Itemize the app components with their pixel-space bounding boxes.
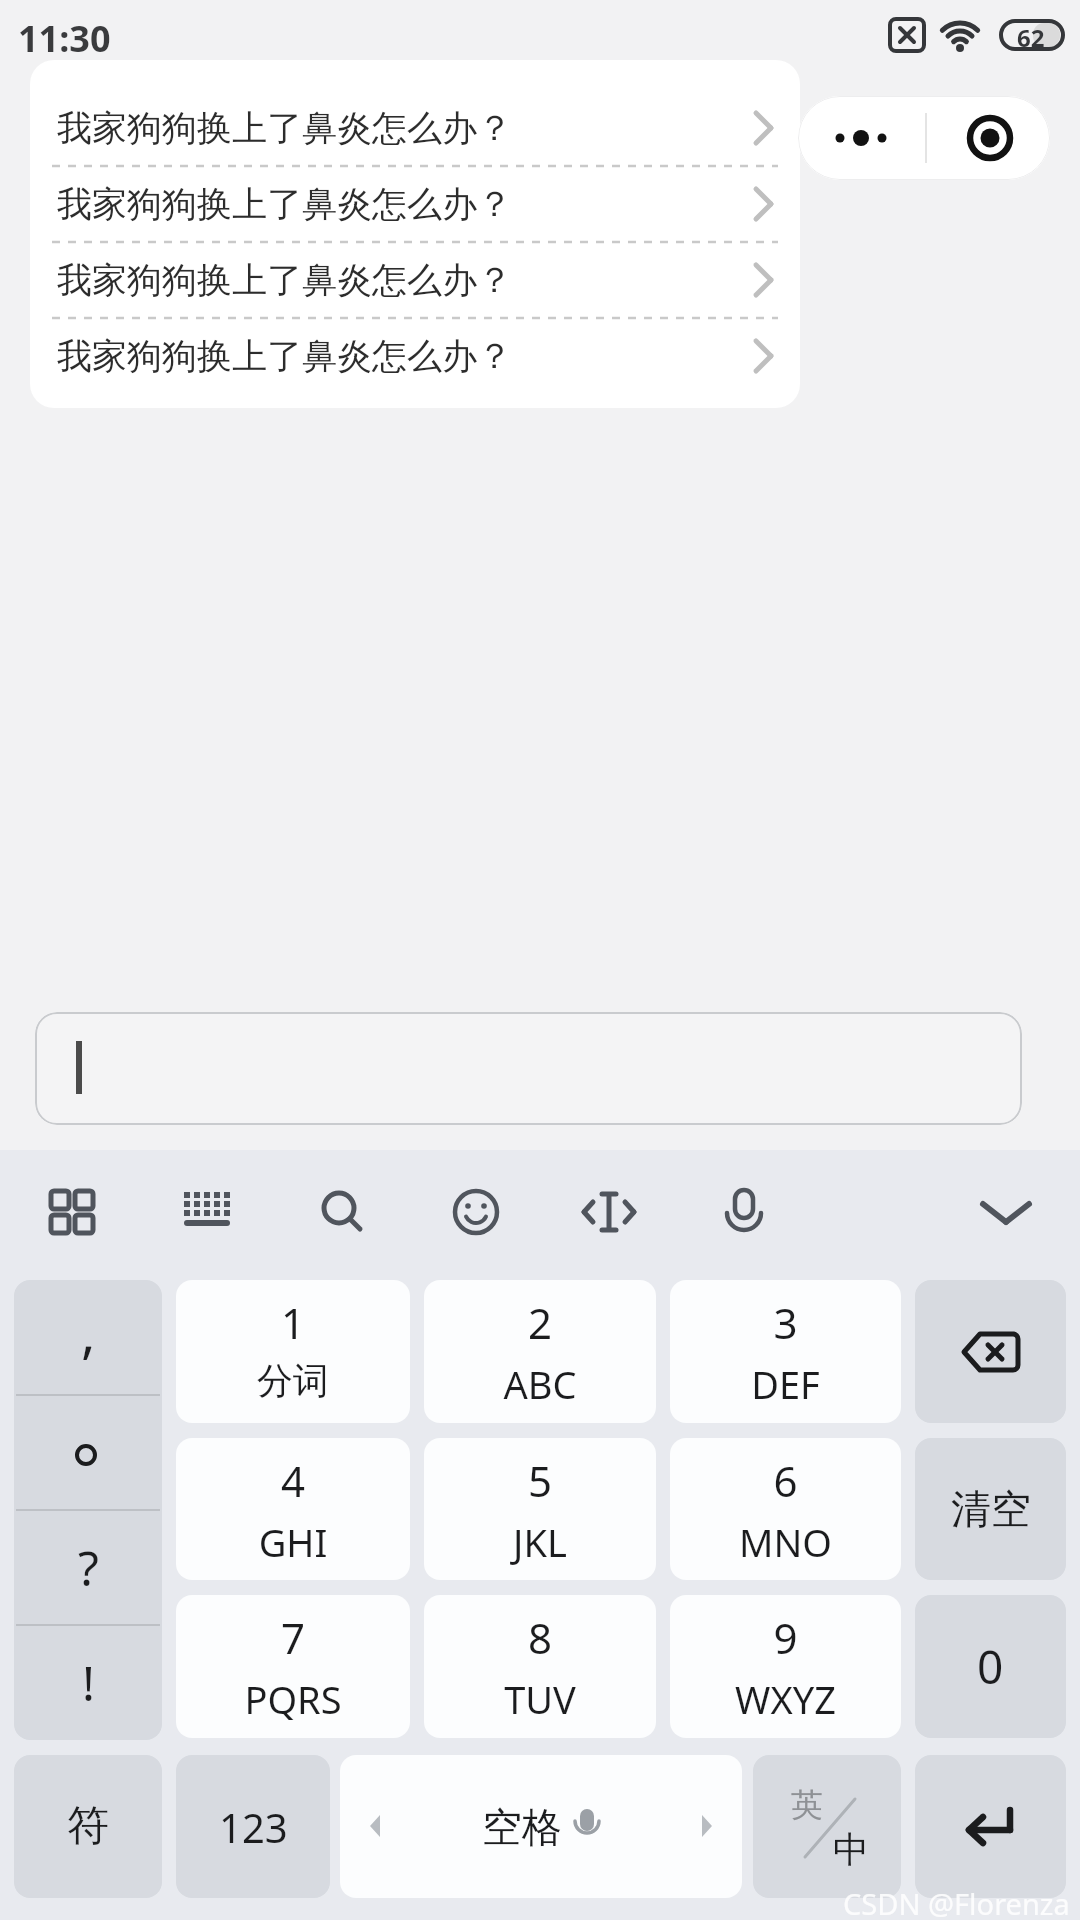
button[interactable]: 1: [176, 1280, 410, 1423]
button[interactable]: 清空: [915, 1438, 1066, 1580]
button[interactable]: 符: [14, 1755, 162, 1898]
staticText: WXYZ: [670, 1673, 901, 1725]
staticText: MNO: [670, 1516, 901, 1568]
staticText: 分词: [176, 1358, 410, 1403]
button[interactable]: 9: [670, 1595, 901, 1738]
staticText: PQRS: [176, 1673, 410, 1725]
button[interactable]: [442, 1178, 510, 1246]
staticText: ,: [81, 1295, 96, 1369]
staticText: 中: [833, 1827, 869, 1872]
button[interactable]: 2: [424, 1280, 656, 1423]
button[interactable]: ,: [14, 1280, 162, 1395]
staticText: DEF: [670, 1358, 901, 1410]
button[interactable]: [710, 1178, 778, 1246]
button[interactable]: 0: [915, 1595, 1066, 1738]
button[interactable]: 4: [176, 1438, 410, 1580]
staticText: 9: [670, 1609, 901, 1666]
staticText: 我家狗狗换上了鼻炎怎么办？: [57, 258, 512, 302]
button[interactable]: [308, 1178, 376, 1246]
staticText: 4: [176, 1452, 410, 1509]
button[interactable]: [924, 96, 1050, 180]
staticText: !: [82, 1650, 95, 1715]
staticText: 我家狗狗换上了鼻炎怎么办？: [57, 334, 512, 378]
button[interactable]: ?: [14, 1510, 162, 1625]
staticText: 1: [176, 1294, 410, 1351]
staticText: 2: [424, 1294, 656, 1351]
staticText: 123: [219, 1800, 288, 1854]
staticText: 3: [670, 1294, 901, 1351]
button[interactable]: 3: [670, 1280, 901, 1423]
staticText: TUV: [424, 1673, 656, 1725]
staticText: 空格: [482, 1802, 562, 1852]
button[interactable]: 我家狗狗换上了鼻炎怎么办？: [30, 90, 800, 166]
staticText: 7: [176, 1609, 410, 1666]
button[interactable]: [915, 1755, 1066, 1898]
button[interactable]: 8: [424, 1595, 656, 1738]
staticText: 我家狗狗换上了鼻炎怎么办？: [57, 106, 512, 150]
button[interactable]: [173, 1178, 241, 1246]
button[interactable]: [915, 1280, 1066, 1423]
staticText: 5: [424, 1452, 656, 1509]
button[interactable]: 123: [176, 1755, 330, 1898]
button[interactable]: [38, 1178, 106, 1246]
staticText: 英: [791, 1785, 823, 1825]
staticText: 6: [670, 1452, 901, 1509]
button[interactable]: !: [14, 1625, 162, 1740]
staticText: 8: [424, 1609, 656, 1666]
button[interactable]: [798, 96, 924, 180]
staticText: 符: [67, 1800, 109, 1853]
staticText: 62: [1017, 21, 1061, 54]
button[interactable]: [972, 1178, 1040, 1246]
staticText: ABC: [424, 1358, 656, 1410]
button[interactable]: 我家狗狗换上了鼻炎怎么办？: [30, 318, 800, 394]
staticText: 我家狗狗换上了鼻炎怎么办？: [57, 182, 512, 226]
button[interactable]: 我家狗狗换上了鼻炎怎么办？: [30, 166, 800, 242]
staticText: JKL: [424, 1516, 656, 1568]
staticText: CSDN @Florenza: [843, 1884, 1070, 1920]
staticText: 11:30: [18, 14, 111, 63]
button[interactable]: 空格: [340, 1755, 742, 1898]
staticText: 清空: [951, 1484, 1031, 1534]
button[interactable]: [575, 1178, 643, 1246]
button[interactable]: 英: [753, 1755, 901, 1898]
button[interactable]: [35, 1012, 1022, 1125]
staticText: 0: [977, 1635, 1004, 1698]
staticText: ?: [78, 1535, 99, 1600]
button[interactable]: 6: [670, 1438, 901, 1580]
button[interactable]: [14, 1395, 162, 1510]
button[interactable]: 5: [424, 1438, 656, 1580]
button[interactable]: 7: [176, 1595, 410, 1738]
staticText: GHI: [176, 1516, 410, 1568]
button[interactable]: 我家狗狗换上了鼻炎怎么办？: [30, 242, 800, 318]
